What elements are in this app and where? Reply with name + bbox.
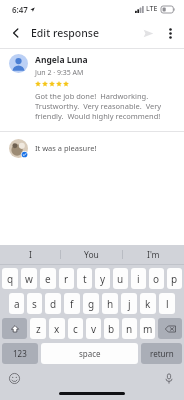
staticText: m	[143, 322, 153, 336]
staticText: Edit response	[31, 26, 99, 40]
staticText: y	[100, 272, 106, 286]
staticText: You	[84, 249, 99, 261]
button[interactable]: y	[95, 268, 110, 289]
button[interactable]: I	[0, 245, 60, 264]
staticText: Angela Luna	[35, 54, 88, 66]
button[interactable]: e	[40, 268, 56, 289]
staticText: return	[150, 348, 174, 359]
button[interactable]: q	[2, 268, 18, 289]
staticText: s	[32, 297, 37, 311]
button[interactable]: Dictation	[161, 370, 177, 386]
button[interactable]: Send	[137, 22, 159, 44]
staticText: x	[54, 322, 60, 336]
button[interactable]: o	[149, 268, 164, 289]
staticText: a	[14, 297, 20, 311]
button[interactable]: u	[113, 268, 128, 289]
staticText: 123	[13, 348, 27, 359]
button[interactable]: I'm	[123, 245, 184, 264]
staticText: j	[128, 297, 131, 311]
staticText: k	[145, 297, 151, 311]
staticText: h	[107, 297, 114, 311]
button[interactable]: s	[27, 293, 42, 314]
staticText: q	[7, 272, 14, 286]
button[interactable]: i	[131, 268, 146, 289]
button[interactable]: More options	[159, 22, 181, 44]
button[interactable]: m	[140, 318, 155, 339]
button[interactable]: j	[121, 293, 137, 314]
staticText: I	[29, 249, 32, 261]
button[interactable]: Backspace	[158, 318, 182, 339]
staticText: r	[64, 272, 69, 286]
button[interactable]: g	[83, 293, 99, 314]
button[interactable]: t	[77, 268, 92, 289]
staticText: l	[166, 297, 169, 311]
button[interactable]: space	[41, 343, 138, 364]
staticText: Jun 2 · 9:35 AM	[35, 68, 84, 78]
button[interactable]: a	[9, 293, 24, 314]
button[interactable]: w	[21, 268, 37, 289]
staticText: Got the job done! Hardworking. Trustwort…	[35, 91, 176, 121]
staticText: 6:47	[12, 4, 28, 15]
staticText: b	[108, 322, 115, 336]
staticText: f	[70, 297, 74, 311]
button[interactable]: n	[122, 318, 137, 339]
staticText: LTE	[146, 4, 158, 14]
button[interactable]: Emoji	[6, 370, 22, 386]
button[interactable]: c	[68, 318, 83, 339]
button[interactable]: You	[61, 245, 122, 264]
button[interactable]: p	[167, 268, 182, 289]
staticText: w	[25, 272, 33, 286]
button[interactable]: k	[140, 293, 156, 314]
button[interactable]: l	[159, 293, 175, 314]
button[interactable]: Shift	[2, 318, 27, 339]
button[interactable]: f	[64, 293, 80, 314]
staticText: I'm	[147, 249, 160, 261]
button[interactable]: z	[30, 318, 46, 339]
button[interactable]: r	[59, 268, 74, 289]
staticText: o	[153, 272, 160, 286]
staticText: e	[45, 272, 51, 286]
staticText: i	[137, 272, 140, 286]
button[interactable]: 123	[2, 343, 38, 364]
button[interactable]: v	[86, 318, 101, 339]
button[interactable]: return	[141, 343, 182, 364]
staticText: v	[91, 322, 97, 336]
button[interactable]: x	[49, 318, 65, 339]
staticText: It was a pleasure!	[35, 143, 97, 153]
button[interactable]: Back	[5, 22, 27, 44]
staticText: z	[36, 322, 41, 336]
button[interactable]: b	[104, 318, 119, 339]
staticText: p	[171, 272, 178, 286]
staticText: n	[126, 322, 133, 336]
staticText: c	[73, 322, 78, 336]
staticText: t	[83, 272, 87, 286]
staticText: space	[79, 348, 101, 359]
staticText: d	[50, 297, 57, 311]
staticText: u	[117, 272, 124, 286]
button[interactable]: d	[45, 293, 61, 314]
staticText: g	[88, 297, 95, 311]
button[interactable]: h	[102, 293, 118, 314]
